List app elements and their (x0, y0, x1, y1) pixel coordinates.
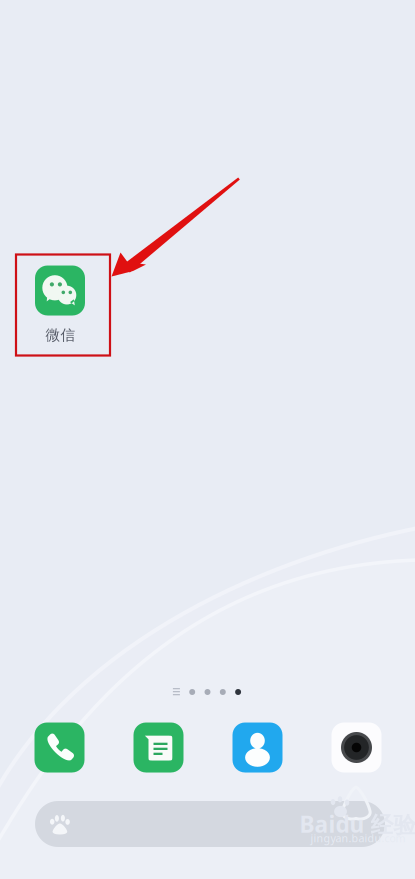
button[interactable]: Search (35, 801, 385, 847)
button[interactable]: Camera (331, 722, 381, 772)
button[interactable]: Phone (34, 722, 84, 772)
staticText: Baidu 经验 (299, 809, 415, 839)
button[interactable]: Contacts (232, 722, 282, 772)
button[interactable]: 微信 (16, 254, 110, 355)
staticText: jingyan.baidu.com (310, 831, 405, 845)
button[interactable]: Messages (133, 722, 183, 772)
staticText: 微信 (45, 326, 75, 344)
